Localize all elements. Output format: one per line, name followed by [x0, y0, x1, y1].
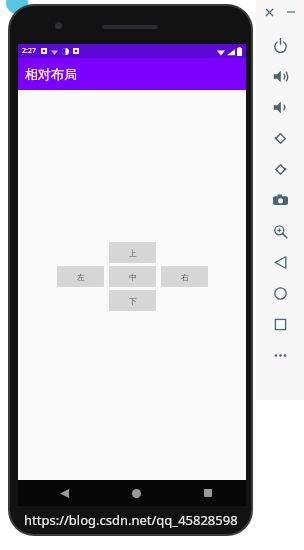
button[interactable]: Volume down	[256, 92, 304, 123]
button[interactable]: Take screenshot	[256, 185, 304, 216]
button[interactable]: Overview	[256, 309, 304, 340]
button[interactable]: 中	[109, 266, 156, 287]
button[interactable]: 上	[109, 242, 156, 263]
button[interactable]: Zoom	[256, 216, 304, 247]
button[interactable]: Home	[256, 278, 304, 309]
button[interactable]: Power	[256, 30, 304, 61]
staticText: 相对布局	[25, 66, 77, 82]
button[interactable]: 左	[57, 266, 104, 287]
button[interactable]: Volume up	[256, 61, 304, 92]
button[interactable]: Recent apps	[198, 483, 218, 503]
button[interactable]: 右	[161, 266, 208, 287]
button[interactable]: Home	[126, 483, 146, 503]
staticText: 中	[129, 272, 137, 282]
button[interactable]: More	[256, 340, 304, 371]
staticText: 左	[77, 272, 85, 282]
staticText: 右	[181, 272, 189, 282]
button[interactable]: Close	[261, 4, 277, 20]
button[interactable]: Rotate left	[256, 123, 304, 154]
button[interactable]: Rotate right	[256, 154, 304, 185]
button[interactable]: Minimize	[283, 4, 299, 20]
button[interactable]: Back	[54, 483, 74, 503]
button[interactable]: 下	[109, 290, 156, 311]
staticText: 上	[129, 248, 137, 258]
staticText: https://blog.csdn.net/qq_45828598	[24, 511, 238, 529]
staticText: 下	[129, 296, 137, 306]
staticText: 2:27	[22, 46, 36, 56]
button[interactable]: Back	[256, 247, 304, 278]
